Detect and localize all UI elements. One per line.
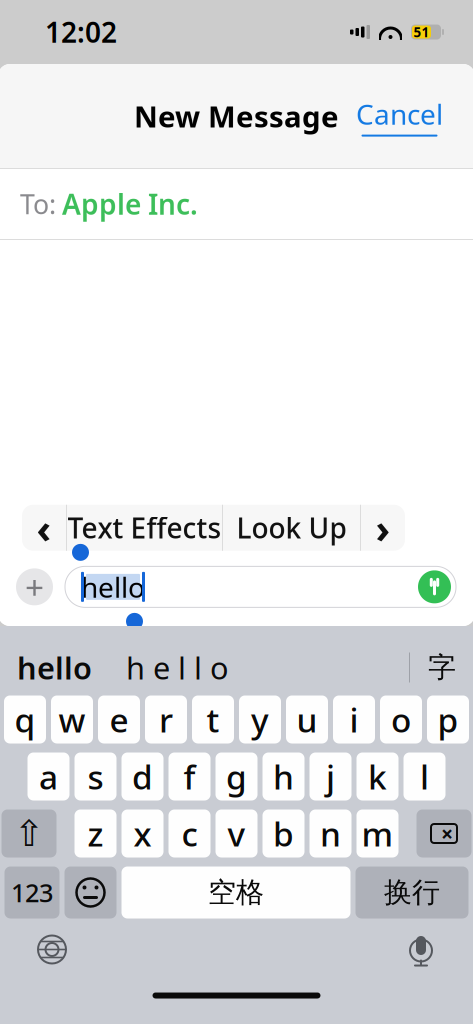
- button[interactable]: e: [98, 695, 140, 743]
- button[interactable]: y: [239, 695, 281, 743]
- button[interactable]: Look Up: [223, 505, 360, 551]
- button[interactable]: j: [309, 752, 351, 800]
- staticText: t: [206, 697, 219, 742]
- button[interactable]: s: [74, 752, 116, 800]
- staticText: d: [132, 754, 153, 799]
- button[interactable]: m: [356, 809, 398, 857]
- button[interactable]: Add attachment: [16, 565, 53, 609]
- staticText: hello: [17, 647, 92, 688]
- button[interactable]: h e l l o: [118, 641, 237, 694]
- button[interactable]: c: [168, 809, 210, 857]
- staticText: c: [181, 811, 197, 856]
- button[interactable]: Input mode: [424, 646, 460, 689]
- staticText: 12:02: [45, 13, 117, 51]
- button[interactable]: Previous: [22, 505, 66, 551]
- staticText: u: [296, 697, 317, 742]
- staticText: ›: [375, 501, 390, 554]
- staticText: a: [39, 754, 58, 799]
- staticText: k: [368, 754, 387, 799]
- staticText: m: [361, 811, 393, 856]
- staticText: Text Effects: [67, 509, 221, 546]
- button[interactable]: n: [309, 809, 351, 857]
- button[interactable]: Dictation: [394, 920, 448, 978]
- staticText: n: [320, 811, 341, 856]
- staticText: r: [159, 697, 173, 742]
- button[interactable]: v: [215, 809, 257, 857]
- staticText: w: [58, 697, 85, 742]
- staticText: s: [87, 754, 103, 799]
- button[interactable]: d: [121, 752, 163, 800]
- button[interactable]: h: [262, 752, 304, 800]
- staticText: e: [109, 697, 128, 742]
- button[interactable]: 换行: [355, 866, 468, 918]
- staticText: 字: [428, 650, 456, 685]
- button[interactable]: Send: [418, 570, 451, 603]
- staticText: b: [273, 811, 294, 856]
- button[interactable]: Switch keyboard: [25, 922, 79, 976]
- staticText: g: [226, 754, 247, 799]
- button[interactable]: g: [215, 752, 257, 800]
- staticText: New Message: [134, 96, 339, 135]
- staticText: To:: [20, 186, 56, 222]
- button[interactable]: More: [361, 505, 405, 551]
- staticText: 123: [11, 876, 53, 909]
- button[interactable]: w: [51, 695, 93, 743]
- staticText: f: [183, 754, 195, 799]
- staticText: hello: [81, 568, 145, 605]
- button[interactable]: t: [192, 695, 234, 743]
- staticText: y: [251, 697, 269, 742]
- staticText: p: [437, 697, 458, 742]
- staticText: +: [25, 565, 44, 609]
- staticText: x: [133, 811, 151, 856]
- staticText: h e l l o: [126, 647, 229, 688]
- staticText: l: [420, 754, 429, 799]
- button[interactable]: b: [262, 809, 304, 857]
- button[interactable]: Shift: [1, 809, 56, 857]
- button[interactable]: p: [427, 695, 469, 743]
- button[interactable]: a: [27, 752, 69, 800]
- staticText: ×: [441, 819, 453, 848]
- button[interactable]: l: [403, 752, 445, 800]
- button[interactable]: hello: [9, 641, 100, 694]
- button[interactable]: k: [356, 752, 398, 800]
- staticText: z: [87, 811, 103, 856]
- button[interactable]: f: [168, 752, 210, 800]
- staticText: q: [14, 697, 35, 742]
- button[interactable]: r: [145, 695, 187, 743]
- staticText: 51: [413, 23, 429, 41]
- staticText: ⇧: [14, 813, 44, 854]
- staticText: Apple Inc.: [62, 185, 198, 223]
- button[interactable]: Apple Inc.: [62, 185, 198, 223]
- button[interactable]: 空格: [121, 866, 350, 918]
- button[interactable]: Cancel: [350, 87, 449, 145]
- staticText: ‹: [36, 501, 51, 554]
- button[interactable]: Text Effects: [67, 505, 222, 551]
- staticText: 换行: [384, 875, 440, 910]
- staticText: o: [391, 697, 411, 742]
- staticText: Cancel: [356, 95, 443, 133]
- button[interactable]: Emoji: [64, 866, 116, 918]
- button[interactable]: i: [333, 695, 375, 743]
- button[interactable]: u: [286, 695, 328, 743]
- button[interactable]: o: [380, 695, 422, 743]
- staticText: h: [273, 754, 294, 799]
- button[interactable]: Delete: [416, 809, 471, 857]
- staticText: i: [349, 697, 358, 742]
- button[interactable]: 123: [4, 866, 59, 918]
- staticText: 空格: [208, 875, 264, 910]
- button[interactable]: z: [74, 809, 116, 857]
- staticText: v: [227, 811, 245, 856]
- staticText: j: [326, 754, 335, 799]
- staticText: Look Up: [236, 509, 346, 546]
- button[interactable]: x: [121, 809, 163, 857]
- button[interactable]: q: [4, 695, 46, 743]
